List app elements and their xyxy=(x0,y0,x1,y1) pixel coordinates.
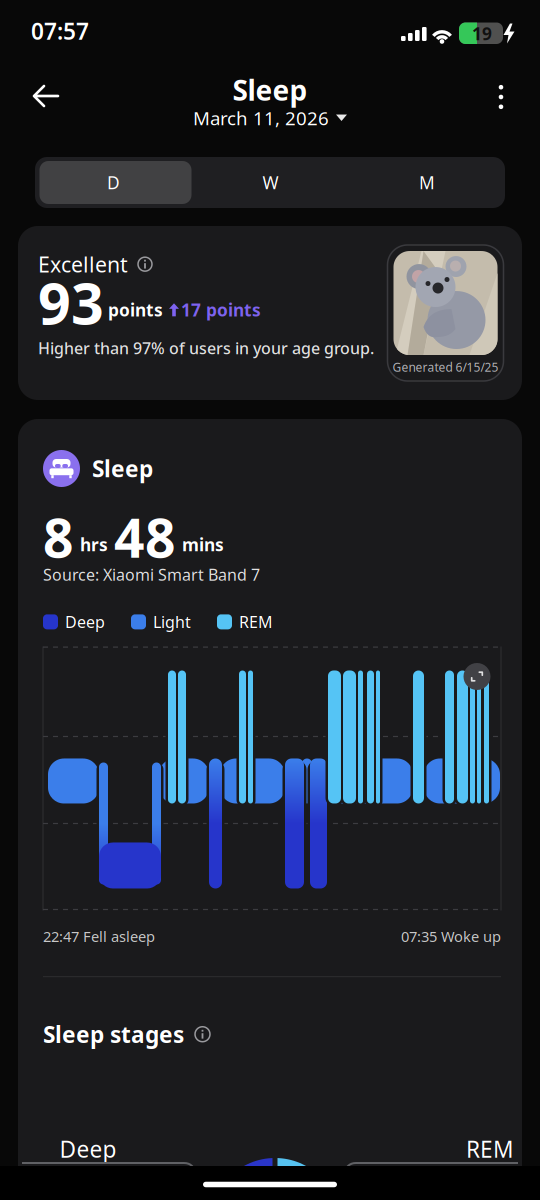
button[interactable]: M xyxy=(349,157,505,208)
staticText: Light xyxy=(153,611,191,632)
button[interactable] xyxy=(31,84,61,108)
staticText: 93 xyxy=(38,264,104,340)
staticText: hrs xyxy=(80,533,108,556)
staticText: M xyxy=(419,171,435,194)
staticText: Generated 6/15/25 xyxy=(392,359,498,375)
button[interactable] xyxy=(486,80,516,114)
staticText: 07:35 Woke up xyxy=(401,926,501,946)
staticText: D xyxy=(107,171,120,194)
button[interactable]: W xyxy=(192,157,349,208)
staticText: Sleep stages xyxy=(43,1019,184,1049)
staticText: W xyxy=(262,171,278,194)
button[interactable] xyxy=(463,663,490,690)
button[interactable]: March 11, 2026 xyxy=(193,106,347,130)
staticText: 8 xyxy=(43,502,74,572)
staticText: 22:47 Fell asleep xyxy=(43,926,155,946)
staticText: points xyxy=(108,298,163,321)
staticText: REM xyxy=(239,611,273,632)
staticText: Deep xyxy=(59,1134,116,1164)
staticText: Source: Xiaomi Smart Band 7 xyxy=(43,564,260,585)
staticText: 07:57 xyxy=(31,16,89,46)
staticText: Sleep xyxy=(232,71,307,109)
button[interactable]: Generated 6/15/25 xyxy=(387,245,503,381)
button[interactable]: D xyxy=(35,157,192,208)
button[interactable] xyxy=(195,1027,210,1042)
button[interactable] xyxy=(138,257,152,271)
staticText: Sleep xyxy=(92,453,153,483)
staticText: March 11, 2026 xyxy=(193,106,329,130)
staticText: 17 points xyxy=(181,298,261,321)
staticText: 48 xyxy=(114,502,176,572)
staticText: Deep xyxy=(65,611,105,632)
staticText: 19 xyxy=(472,22,492,45)
staticText: mins xyxy=(182,533,224,556)
staticText: Excellent xyxy=(38,250,128,278)
staticText: REM xyxy=(466,1134,514,1164)
staticText: Higher than 97% of users in your age gro… xyxy=(38,337,374,358)
